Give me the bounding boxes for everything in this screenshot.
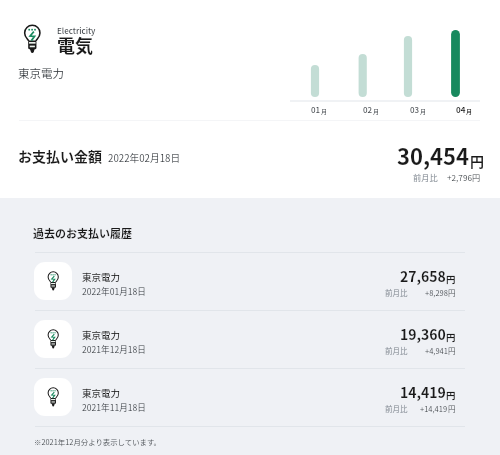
staticText: 過去のお支払い履歴 (33, 225, 132, 241)
staticText: 前月比 (385, 403, 408, 414)
staticText: 東京電力 (82, 386, 121, 400)
button[interactable]: 東京電力 (0, 369, 500, 426)
staticText: 27,658 (400, 266, 446, 286)
button[interactable]: 東京電力 (0, 253, 500, 310)
staticText: 月 (321, 107, 328, 116)
staticText: +2,796 (447, 171, 472, 183)
staticText: 14,419 (400, 382, 446, 402)
staticText: +8,298 (425, 287, 448, 298)
staticText: 2022年01月18日 (82, 285, 146, 297)
staticText: +4,941 (425, 345, 448, 356)
staticText: 30,454 (397, 139, 470, 171)
staticText: 03 (410, 104, 420, 116)
staticText: ※2021年12月分より表示しています。 (34, 436, 161, 447)
staticText: 円 (472, 171, 481, 183)
staticText: 東京電力 (82, 270, 121, 284)
staticText: 月 (373, 107, 380, 116)
staticText: 円 (446, 388, 456, 402)
staticText: 19,360 (400, 324, 446, 344)
staticText: 円 (448, 403, 456, 414)
staticText: 2022年02月18日 (108, 151, 181, 165)
staticText: +14,419 (420, 403, 448, 414)
staticText: 円 (446, 272, 456, 286)
staticText: 02 (363, 104, 373, 116)
staticText: 円 (448, 345, 456, 356)
staticText: 01 (311, 104, 321, 116)
staticText: 2021年11月18日 (82, 401, 146, 413)
staticText: 前月比 (413, 171, 438, 183)
staticText: 東京電力 (18, 65, 64, 82)
staticText: 2021年12月18日 (82, 343, 146, 355)
staticText: 円 (446, 330, 456, 344)
staticText: 東京電力 (82, 328, 121, 342)
staticText: 04 (456, 104, 466, 116)
staticText: 電気 (57, 32, 93, 58)
staticText: 月 (466, 107, 473, 116)
staticText: 月 (420, 107, 427, 116)
button[interactable]: 東京電力 (0, 311, 500, 368)
staticText: 前月比 (385, 345, 408, 356)
staticText: 前月比 (385, 287, 408, 298)
staticText: 円 (448, 287, 456, 298)
staticText: Electricity (57, 25, 96, 37)
staticText: 円 (470, 151, 484, 171)
staticText: お支払い金額 (18, 146, 102, 166)
